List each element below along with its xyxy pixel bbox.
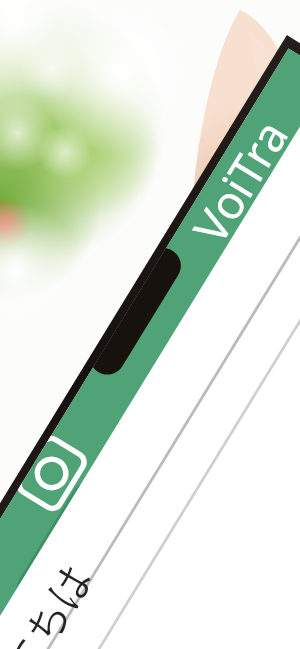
button[interactable]: VoiTra translation screen — [0, 0, 300, 649]
